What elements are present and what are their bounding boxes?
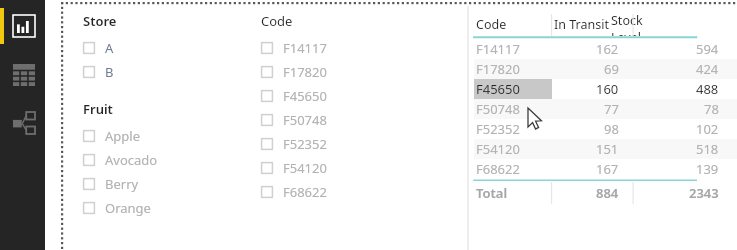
staticText: Berry: [105, 175, 139, 193]
button[interactable]: Report view: [0, 8, 45, 44]
staticText: 167: [596, 160, 619, 178]
staticText: 884: [596, 184, 619, 202]
button[interactable]: F54120: [474, 139, 737, 159]
staticText: Avocado: [105, 151, 158, 169]
staticText: 162: [596, 40, 619, 58]
button[interactable]: Orange: [83, 196, 261, 220]
button[interactable]: F54120: [261, 156, 466, 180]
staticText: F50748: [476, 100, 520, 118]
staticText: F50748: [283, 111, 327, 129]
staticText: 69: [604, 60, 619, 78]
button[interactable]: F17820: [261, 60, 466, 84]
button[interactable]: F52352: [474, 119, 737, 139]
staticText: F17820: [283, 63, 327, 81]
button[interactable]: Code: [261, 12, 293, 30]
button[interactable]: F50748: [474, 99, 737, 119]
staticText: F52352: [476, 120, 520, 138]
staticText: 424: [696, 60, 719, 78]
button[interactable]: Data view: [0, 58, 45, 92]
staticText: Apple: [105, 127, 140, 145]
staticText: F45650: [476, 80, 520, 98]
staticText: 102: [696, 120, 719, 138]
staticText: 77: [604, 100, 619, 118]
staticText: F17820: [476, 60, 520, 78]
staticText: 139: [696, 160, 719, 178]
button[interactable]: F45650: [474, 79, 737, 99]
staticText: 78: [704, 100, 719, 118]
staticText: F54120: [476, 140, 520, 158]
staticText: 151: [596, 140, 619, 158]
staticText: F52352: [283, 135, 327, 153]
staticText: F54120: [283, 159, 327, 177]
staticText: Code: [476, 16, 507, 33]
button[interactable]: Model view: [0, 106, 45, 140]
button[interactable]: Total: [474, 182, 737, 204]
staticText: 594: [696, 40, 719, 58]
button[interactable]: Apple: [83, 124, 261, 148]
staticText: 2343: [689, 184, 719, 202]
button[interactable]: Avocado: [83, 148, 261, 172]
staticText: 488: [696, 80, 719, 98]
staticText: In Transit: [554, 16, 609, 33]
button[interactable]: F52352: [261, 132, 466, 156]
staticText: Total: [476, 184, 508, 202]
staticText: A: [105, 39, 114, 57]
button[interactable]: F68622: [474, 159, 737, 179]
button[interactable]: F14117: [474, 39, 737, 59]
staticText: 518: [696, 140, 719, 158]
button[interactable]: F68622: [261, 180, 466, 204]
staticText: F14117: [476, 40, 520, 58]
staticText: F45650: [283, 87, 327, 105]
button[interactable]: F14117: [261, 36, 466, 60]
button[interactable]: A: [83, 36, 261, 60]
button[interactable]: Berry: [83, 172, 261, 196]
staticText: F68622: [283, 183, 327, 201]
button[interactable]: B: [83, 60, 261, 84]
staticText: 160: [596, 80, 619, 98]
button[interactable]: F45650: [261, 84, 466, 108]
staticText: F68622: [476, 160, 520, 178]
button[interactable]: F50748: [261, 108, 466, 132]
button[interactable]: F17820: [474, 59, 737, 79]
staticText: Stock Level: [611, 12, 660, 36]
button[interactable]: Fruit: [83, 100, 113, 118]
button[interactable]: Store: [83, 12, 117, 30]
staticText: B: [105, 63, 114, 81]
staticText: F14117: [283, 39, 327, 57]
staticText: 98: [604, 120, 619, 138]
staticText: Orange: [105, 199, 151, 217]
